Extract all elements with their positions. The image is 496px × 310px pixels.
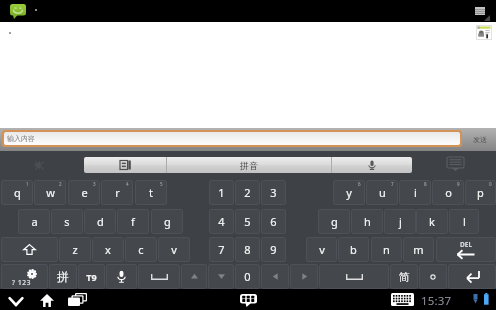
staticText: a — [31, 214, 38, 229]
staticText: 5 — [244, 214, 251, 229]
button[interactable]: 8 — [235, 237, 260, 262]
staticText: m — [413, 242, 424, 257]
staticText: b — [350, 242, 357, 257]
button[interactable]: r — [101, 180, 133, 205]
button[interactable]: Right — [290, 264, 318, 289]
button[interactable]: Period — [419, 264, 447, 289]
staticText: 1 — [26, 181, 29, 187]
button[interactable]: Hide keyboard — [447, 157, 464, 171]
button[interactable]: g — [151, 209, 183, 234]
button[interactable]: 7 — [209, 237, 234, 262]
staticText: 简 — [399, 270, 410, 284]
button[interactable]: 拼 — [49, 264, 77, 289]
other: Left — [270, 271, 281, 282]
staticText: 6 — [270, 214, 277, 229]
button[interactable]: s — [51, 209, 83, 234]
button[interactable]: More options — [475, 7, 485, 15]
button[interactable]: 1 — [209, 180, 234, 205]
other: Space — [346, 274, 363, 280]
button[interactable]: Left — [261, 264, 289, 289]
button[interactable]: g — [318, 209, 350, 234]
button[interactable]: h — [351, 209, 383, 234]
button[interactable]: a — [18, 209, 50, 234]
button[interactable]: 拼音 — [167, 157, 331, 173]
button[interactable]: d — [84, 209, 116, 234]
button[interactable]: Input method — [237, 292, 260, 310]
other: Keyboard layout — [120, 160, 131, 170]
button[interactable]: DEL — [436, 237, 496, 262]
button[interactable]: 5 — [235, 209, 260, 234]
other: Right — [299, 271, 310, 282]
button[interactable]: v — [306, 237, 337, 262]
other: Settings — [27, 269, 37, 279]
button[interactable]: f — [117, 209, 149, 234]
staticText: 3 — [93, 181, 96, 187]
button[interactable]: x — [92, 237, 124, 262]
button[interactable]: 4 — [209, 209, 234, 234]
staticText: 9 — [270, 242, 277, 257]
button[interactable]: Settings — [1, 264, 48, 289]
button[interactable]: 输入内容 — [4, 132, 460, 145]
staticText: 发送 — [473, 135, 487, 144]
button[interactable]: Home — [36, 289, 58, 310]
button[interactable]: Down — [208, 264, 234, 289]
button[interactable]: 6 — [261, 209, 286, 234]
other: Delete — [456, 250, 476, 259]
button[interactable]: Keyboard — [391, 293, 414, 306]
button[interactable]: T9 — [78, 264, 105, 289]
staticText: 8 — [244, 242, 251, 257]
button[interactable]: 3 — [261, 180, 286, 205]
button[interactable]: Voice input — [332, 157, 412, 173]
button[interactable]: Space — [319, 264, 389, 289]
button[interactable]: Messaging — [10, 4, 26, 19]
staticText: 7 — [391, 181, 394, 187]
staticText: 0 — [244, 269, 251, 284]
button[interactable]: 9 — [261, 237, 286, 262]
button[interactable]: o — [432, 180, 464, 205]
button[interactable]: y — [333, 180, 365, 205]
staticText: r — [115, 185, 120, 200]
button[interactable]: v — [158, 237, 190, 262]
button[interactable]: n — [371, 237, 402, 262]
button[interactable]: j — [384, 209, 416, 234]
button[interactable]: q — [1, 180, 33, 205]
staticText: 2 — [59, 181, 62, 187]
button[interactable]: m — [403, 237, 434, 262]
button[interactable]: 2 — [235, 180, 260, 205]
button[interactable]: p — [465, 180, 496, 205]
button[interactable]: Keyboard layout — [84, 157, 166, 173]
button[interactable]: Voice input — [106, 264, 137, 289]
button[interactable]: Shift — [1, 237, 58, 262]
staticText: 0 — [489, 181, 492, 187]
staticText: DEL — [460, 240, 473, 249]
button[interactable]: 0 — [235, 264, 260, 289]
staticText: p — [477, 185, 484, 200]
staticText: c — [138, 242, 144, 257]
button[interactable]: l — [449, 209, 479, 234]
staticText: 8 — [424, 181, 427, 187]
staticText: 1 — [218, 185, 225, 200]
button[interactable]: Mute — [33, 159, 45, 171]
other: Enter — [464, 270, 481, 283]
button[interactable]: z — [59, 237, 91, 262]
staticText: u — [379, 185, 386, 200]
button[interactable]: Enter — [448, 264, 496, 289]
button[interactable]: c — [125, 237, 157, 262]
button[interactable]: u — [366, 180, 398, 205]
button[interactable]: w — [34, 180, 66, 205]
button[interactable]: Back — [2, 289, 30, 310]
staticText: v — [319, 242, 325, 257]
button[interactable]: i — [399, 180, 431, 205]
button[interactable]: Recent apps — [64, 289, 90, 310]
button[interactable]: Space — [138, 264, 180, 289]
button[interactable]: Up — [181, 264, 207, 289]
button[interactable]: 简 — [390, 264, 418, 289]
staticText: ? 123 — [12, 278, 32, 287]
button[interactable]: k — [416, 209, 448, 234]
button[interactable]: t — [135, 180, 167, 205]
button[interactable]: b — [338, 237, 369, 262]
button[interactable]: Attachment — [476, 25, 492, 40]
staticText: 7 — [218, 242, 225, 257]
button[interactable]: e — [68, 180, 100, 205]
button[interactable]: 发送 — [464, 128, 496, 151]
